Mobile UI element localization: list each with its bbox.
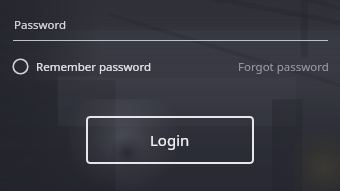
button[interactable]: Login [86,116,254,164]
button[interactable]: Remember password checkbox [10,55,154,78]
button[interactable]: Forgot password [235,56,332,78]
staticText: Login [150,130,190,150]
staticText: Forgot password [238,59,329,75]
staticText: Remember password [36,59,152,75]
staticText: Password [14,17,67,33]
other: Remember password checkbox [12,58,29,75]
